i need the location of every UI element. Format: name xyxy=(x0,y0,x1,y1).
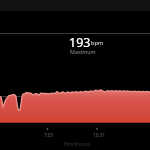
staticText: 10:37 xyxy=(93,132,105,138)
staticText: bpm xyxy=(91,39,104,47)
staticText: Maximum xyxy=(70,48,96,55)
staticText: Time (hours) xyxy=(63,141,91,147)
staticText: 7:05 xyxy=(44,132,54,138)
staticText: 193 xyxy=(69,34,91,51)
